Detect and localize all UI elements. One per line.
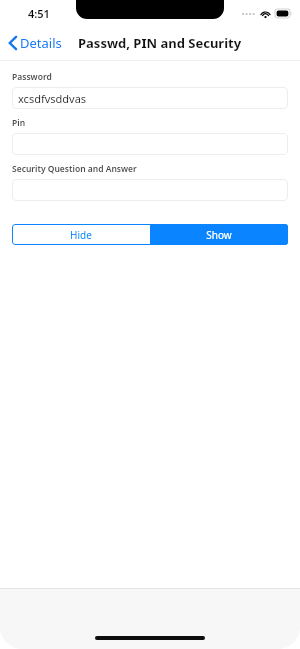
button[interactable]: Show bbox=[150, 224, 288, 245]
staticText: Passwd, PIN and Security bbox=[78, 34, 242, 52]
staticText: Show bbox=[206, 228, 232, 242]
button[interactable] bbox=[12, 133, 288, 155]
button[interactable]: Details bbox=[9, 34, 62, 52]
button[interactable]: Hide bbox=[12, 224, 150, 245]
button[interactable]: xcsdfvsddvas bbox=[12, 87, 288, 109]
staticText: Details bbox=[20, 34, 62, 52]
staticText: 4:51 bbox=[28, 6, 50, 21]
staticText: Security Question and Answer bbox=[12, 163, 137, 175]
staticText: Pin bbox=[12, 117, 26, 129]
staticText: Hide bbox=[70, 228, 92, 242]
staticText: Password bbox=[12, 71, 52, 83]
staticText: xcsdfvsddvas bbox=[18, 91, 87, 106]
button[interactable] bbox=[12, 179, 288, 201]
